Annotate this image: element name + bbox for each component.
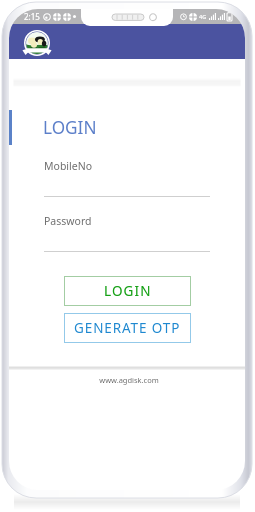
staticText: Password: [44, 214, 92, 228]
button[interactable]: LOGIN: [64, 276, 191, 306]
staticText: www.agdisk.com: [99, 375, 159, 385]
staticText: 4G: [199, 13, 207, 20]
staticText: GENERATE OTP: [74, 319, 181, 337]
staticText: MobileNo: [44, 159, 93, 173]
staticText: LOGIN: [43, 116, 97, 139]
staticText: 2:15: [24, 11, 40, 22]
staticText: LOGIN: [104, 282, 152, 300]
button[interactable]: GENERATE OTP: [64, 313, 191, 343]
